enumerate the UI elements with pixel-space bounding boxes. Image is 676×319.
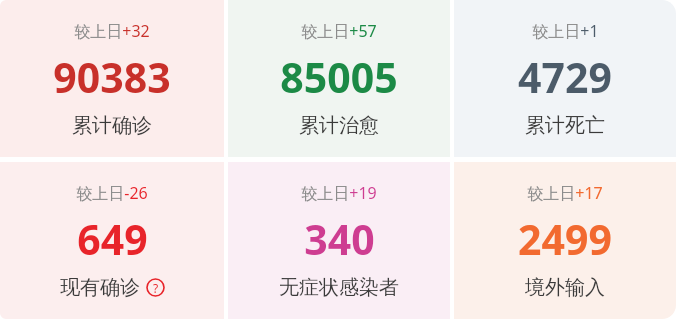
staticText: 649: [77, 211, 148, 267]
button[interactable]: 较上日+32: [0, 0, 224, 157]
button[interactable]: 较上日+19: [228, 162, 450, 319]
button[interactable]: 较上日-26: [0, 162, 224, 319]
staticText: 85005: [280, 49, 398, 105]
staticText: 较上日+1: [532, 20, 599, 42]
staticText: 境外输入: [525, 275, 605, 300]
staticText: 累计治愈: [299, 113, 379, 138]
staticText: 较上日+57: [301, 20, 377, 42]
staticText: 现有确诊: [60, 275, 140, 300]
staticText: 累计确诊: [72, 113, 152, 138]
staticText: 较上日+19: [301, 182, 377, 204]
button[interactable]: 较上日+57: [228, 0, 450, 157]
button[interactable]: Help about current confirmed cases: [146, 278, 165, 297]
staticText: 无症状感染者: [279, 275, 399, 300]
staticText: 较上日+17: [527, 182, 603, 204]
staticText: ?: [153, 280, 159, 296]
staticText: 较上日-26: [76, 182, 148, 204]
staticText: 累计死亡: [525, 113, 605, 138]
staticText: 340: [304, 211, 375, 267]
staticText: 4729: [518, 49, 612, 105]
button[interactable]: 较上日+1: [454, 0, 676, 157]
staticText: 90383: [53, 49, 171, 105]
staticText: 较上日+32: [74, 20, 150, 42]
staticText: 2499: [518, 211, 612, 267]
button[interactable]: 较上日+17: [454, 162, 676, 319]
